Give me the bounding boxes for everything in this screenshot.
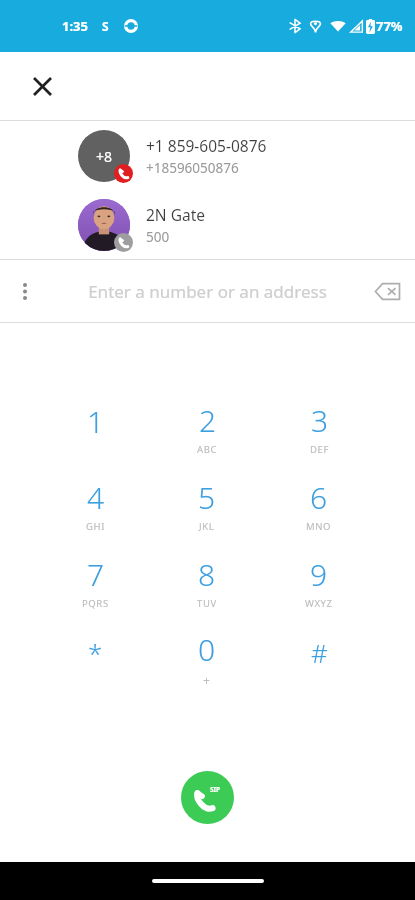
staticText: 9	[310, 554, 328, 595]
staticText: 6	[310, 477, 328, 518]
button[interactable]: 0	[151, 620, 263, 697]
button[interactable]: 1	[40, 389, 151, 466]
staticText: S	[102, 18, 109, 34]
staticText: +	[203, 672, 211, 688]
button[interactable]: 7	[40, 543, 151, 620]
staticText: DEF	[310, 443, 329, 456]
button[interactable]: Close	[20, 64, 64, 108]
staticText: 8	[198, 554, 216, 595]
staticText: 3	[311, 400, 329, 441]
button[interactable]: Call	[181, 771, 234, 824]
button[interactable]: Backspace	[365, 269, 409, 313]
staticText: 2N Gate	[146, 204, 205, 225]
staticText: ABC	[197, 443, 218, 456]
staticText: *	[88, 635, 103, 670]
staticText: #	[311, 635, 328, 670]
staticText: 5	[198, 477, 216, 518]
staticText: MNO	[306, 520, 332, 533]
staticText: 7	[87, 554, 105, 595]
staticText: Enter a number or an address	[88, 280, 327, 303]
button[interactable]: *	[40, 620, 151, 697]
staticText: JKL	[199, 520, 215, 533]
staticText: WXYZ	[305, 597, 333, 610]
staticText: +8	[96, 147, 113, 166]
staticText: 1	[87, 401, 105, 442]
staticText: +1 859-605-0876	[146, 135, 267, 156]
staticText: 500	[146, 228, 170, 246]
staticText: 2	[199, 400, 217, 441]
button[interactable]: +8	[0, 121, 415, 190]
staticText: 77%	[376, 17, 403, 35]
button[interactable]: 9	[263, 543, 375, 620]
button[interactable]: 2	[151, 389, 263, 466]
button[interactable]: #	[263, 620, 375, 697]
staticText: GHI	[86, 520, 105, 533]
staticText: 0	[198, 629, 216, 670]
button[interactable]: 3	[263, 389, 375, 466]
staticText: +18596050876	[146, 159, 239, 177]
button[interactable]: 5	[151, 466, 263, 543]
staticText: PQRS	[82, 597, 109, 610]
button[interactable]: 6	[263, 466, 375, 543]
button[interactable]: 2N Gate	[0, 190, 415, 259]
staticText: TUV	[197, 597, 217, 610]
button[interactable]: More options	[4, 270, 46, 312]
button[interactable]: 4	[40, 466, 151, 543]
staticText: 1:35	[62, 17, 88, 35]
button[interactable]: 8	[151, 543, 263, 620]
staticText: 4	[87, 477, 105, 518]
staticText: SIP	[210, 785, 221, 794]
